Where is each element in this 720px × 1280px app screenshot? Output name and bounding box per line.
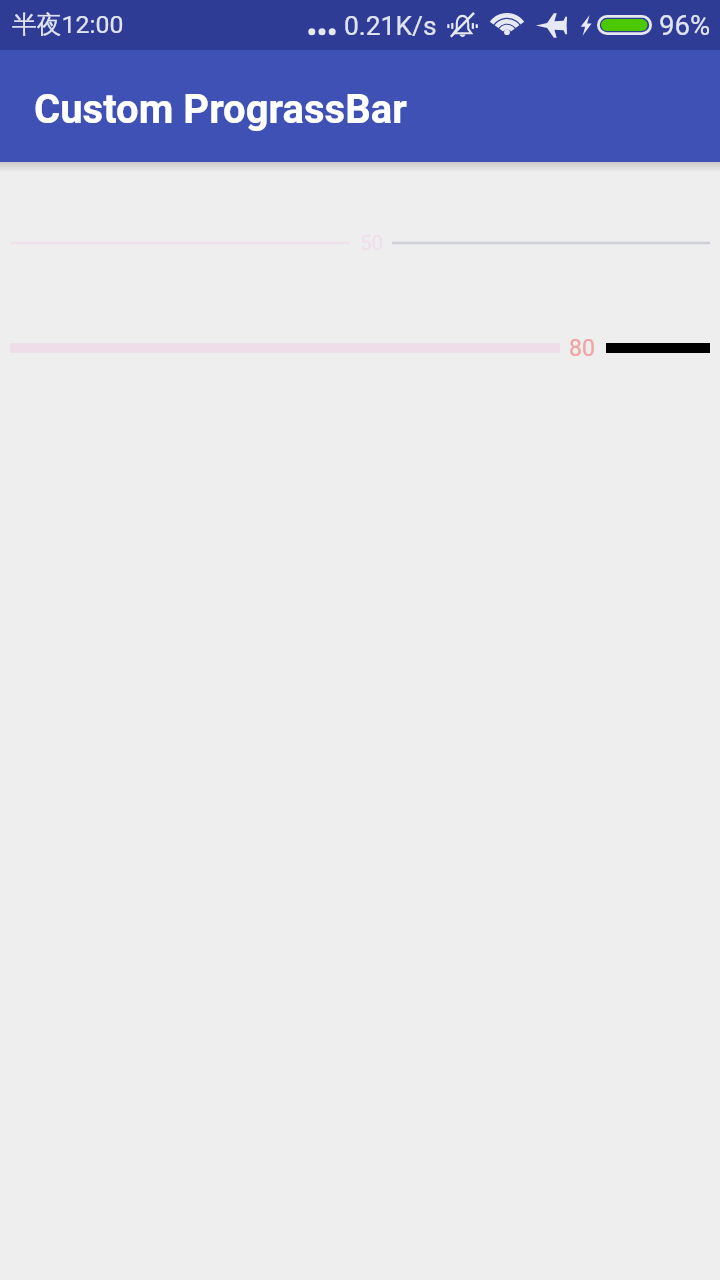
other: Wi-Fi connected — [486, 1, 528, 43]
other: Airplane mode on — [533, 6, 572, 45]
button[interactable]: Progress 80 percent — [0, 328, 720, 368]
other: More notifications — [305, 12, 339, 44]
button[interactable]: Custom PrograssBar — [0, 50, 720, 162]
staticText: 0.21K/s — [344, 11, 437, 42]
staticText: 半夜12:00 — [12, 9, 124, 40]
staticText: 50 — [360, 231, 384, 255]
other: Battery 96 percent — [597, 15, 652, 35]
staticText: Custom PrograssBar — [34, 86, 407, 133]
other: Ringer muted — [445, 7, 480, 42]
other: Charging — [579, 10, 593, 38]
staticText: 96% — [659, 9, 711, 41]
button[interactable]: Progress 50 percent — [0, 223, 720, 263]
staticText: 80 — [569, 335, 595, 362]
